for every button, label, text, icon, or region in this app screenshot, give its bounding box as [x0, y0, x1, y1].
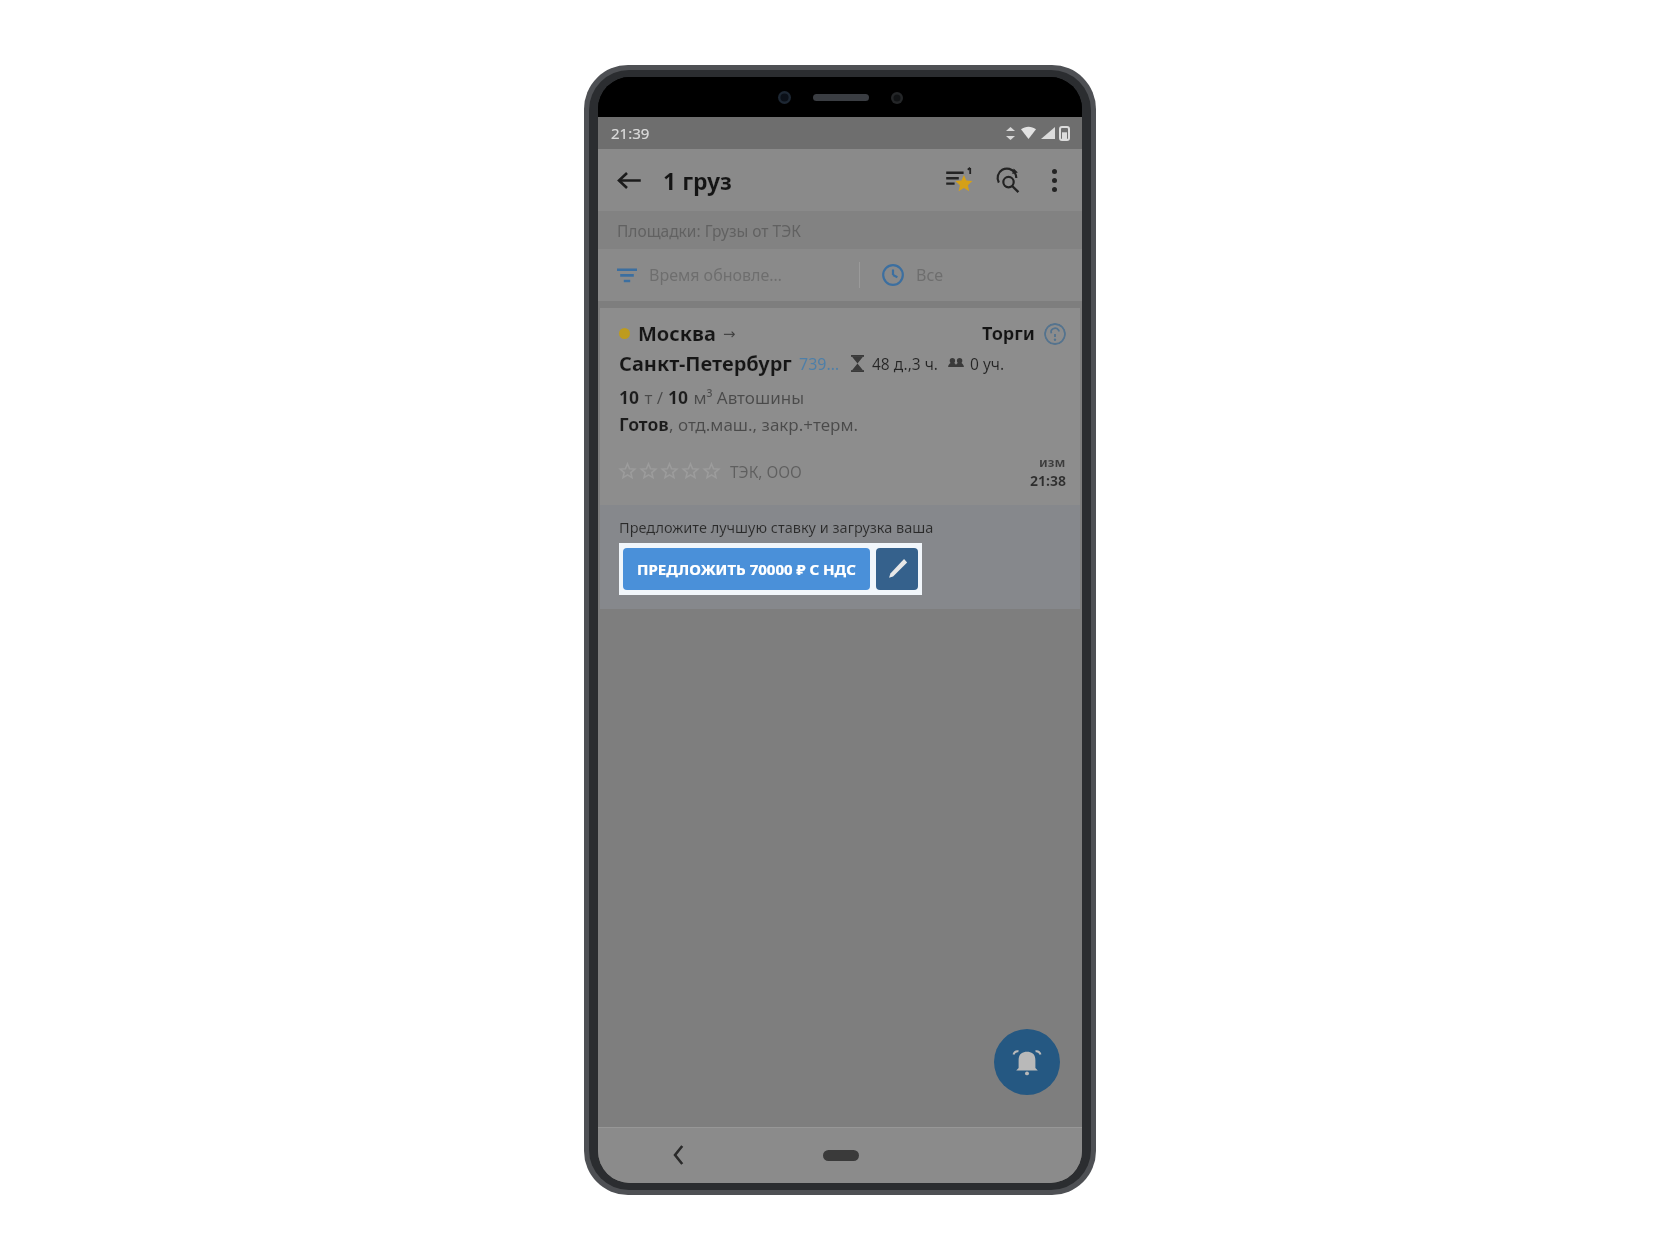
staticText: Москва — [638, 320, 716, 347]
staticText: 1 груз — [663, 165, 732, 196]
staticText: Все — [916, 264, 943, 286]
staticText: → — [723, 325, 736, 342]
button[interactable]: Back — [598, 1127, 760, 1183]
button[interactable]: ПРЕДЛОЖИТЬ 70000 ₽ С НДС — [623, 548, 870, 590]
button[interactable]: More options — [1032, 158, 1076, 202]
staticText: ПРЕДЛОЖИТЬ 70000 ₽ С НДС — [637, 559, 856, 579]
staticText: Предложите лучшую ставку и загрузка ваша — [619, 517, 934, 537]
button[interactable]: Back — [605, 156, 653, 204]
staticText: 48 д.,3 ч. — [872, 353, 938, 374]
staticText: 10 — [668, 385, 689, 409]
staticText: ТЭК, ООО — [730, 461, 802, 482]
button[interactable]: Recents — [921, 1127, 1082, 1183]
staticText: Готов — [619, 412, 669, 436]
staticText: 21:38 — [1030, 471, 1066, 490]
staticText: Торги — [982, 321, 1035, 346]
button[interactable]: Все — [860, 249, 1082, 301]
button[interactable]: Время обновле… — [598, 249, 859, 301]
button[interactable]: Auction help — [1044, 323, 1066, 345]
button[interactable]: Refresh search — [984, 156, 1032, 204]
button[interactable]: Москва — [600, 308, 1080, 505]
staticText: Площадки: Грузы от ТЭК — [617, 220, 801, 241]
staticText: 10 — [619, 385, 640, 409]
staticText: т / — [640, 386, 668, 409]
staticText: м³ Автошины — [689, 386, 805, 409]
button[interactable]: Home — [760, 1127, 921, 1183]
button[interactable]: Sorting favourites — [936, 156, 984, 204]
staticText: 739… — [799, 353, 840, 375]
staticText: изм — [1039, 453, 1066, 471]
button[interactable]: Edit bid — [876, 548, 918, 590]
button[interactable]: Площадки: Грузы от ТЭК — [598, 211, 1082, 249]
staticText: 0 уч. — [970, 353, 1005, 374]
staticText: Санкт-Петербург — [619, 350, 792, 377]
button[interactable]: Notifications — [994, 1029, 1060, 1095]
staticText: , отд.маш., закр.+терм. — [669, 413, 859, 436]
staticText: Время обновле… — [649, 264, 782, 286]
staticText: 21:39 — [611, 123, 650, 143]
